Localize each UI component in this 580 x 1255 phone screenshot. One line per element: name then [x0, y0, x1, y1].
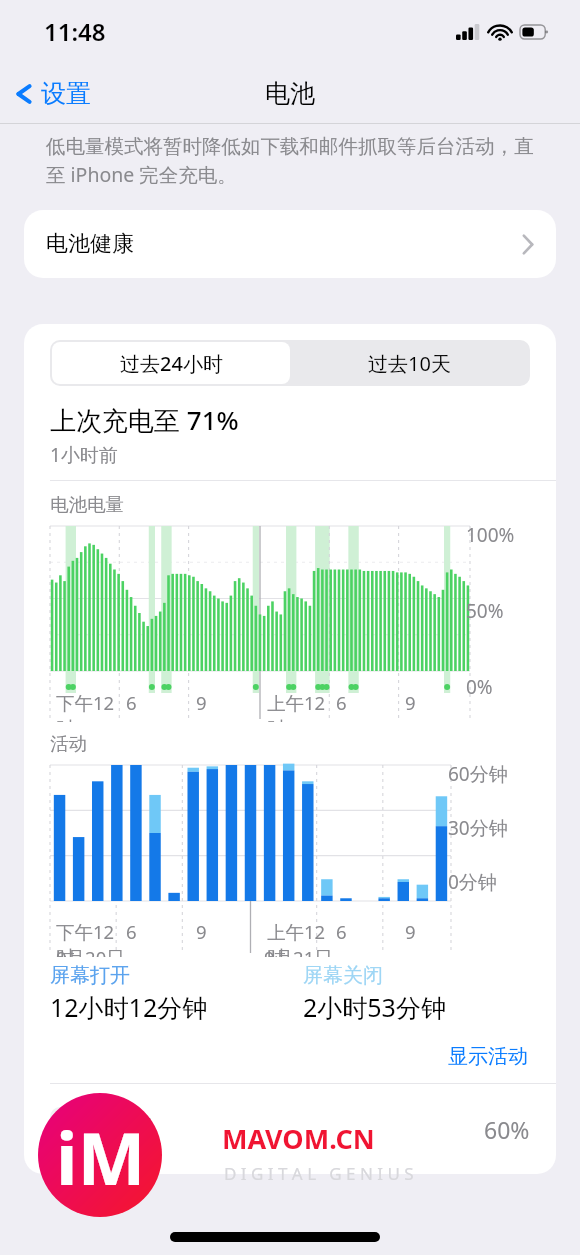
staticText: 上次充电至 71% — [50, 402, 239, 438]
staticText: 屏幕打开 — [50, 963, 130, 988]
staticText: 设置 — [41, 78, 91, 109]
staticText: 过去24小时 — [120, 350, 223, 377]
staticText: 6 — [336, 690, 347, 715]
staticText: 上午12时 — [267, 919, 330, 957]
staticText: 电池健康 — [46, 230, 134, 258]
button[interactable]: 显示活动 — [442, 1038, 534, 1075]
staticText: 上午12时 — [267, 690, 330, 722]
button[interactable]: 过去10天 — [290, 342, 528, 384]
button[interactable]: 过去24小时 — [52, 342, 290, 384]
staticText: 低电量模式将暂时降低如下载和邮件抓取等后台活动，直至 iPhone 完全充电。 — [46, 134, 540, 188]
staticText: 9 — [196, 919, 207, 944]
staticText: 0% — [466, 674, 493, 700]
staticText: 2小时53分钟 — [303, 990, 446, 1024]
button[interactable]: 设置 — [0, 72, 103, 115]
staticText: MAVOM.CN — [222, 1120, 375, 1157]
staticText: 12小时12分钟 — [50, 990, 208, 1024]
staticText: 60分钟 — [448, 761, 508, 787]
staticText: 9月20日 — [56, 945, 125, 957]
staticText: D I G I T A L G E N I U S — [224, 1162, 414, 1185]
staticText: iM — [56, 1108, 146, 1206]
staticText: 50% — [466, 598, 504, 624]
staticText: 电池 — [265, 78, 315, 109]
staticText: 9 — [405, 690, 416, 715]
staticText: 下午12时 — [56, 690, 120, 722]
staticText: 11:48 — [44, 15, 106, 48]
staticText: 6 — [126, 919, 137, 944]
staticText: 6 — [126, 690, 137, 715]
staticText: 活动 — [50, 732, 87, 755]
staticText: 60% — [484, 1114, 530, 1145]
button[interactable]: 荣耀 — [24, 1084, 556, 1174]
staticText: 显示活动 — [448, 1044, 528, 1069]
staticText: 下午12时 — [56, 919, 120, 957]
staticText: 1小时前 — [50, 442, 118, 468]
staticText: 9 — [405, 919, 416, 944]
staticText: 过去10天 — [368, 350, 451, 377]
staticText: 电池电量 — [50, 493, 124, 516]
staticText: 0分钟 — [448, 869, 497, 895]
staticText: 9 — [196, 690, 207, 715]
staticText: 荣耀 — [108, 1115, 152, 1143]
button[interactable]: 电池健康 — [24, 210, 556, 278]
staticText: 屏幕关闭 — [303, 963, 383, 988]
staticText: 9月21日 — [264, 945, 333, 957]
staticText: 6 — [336, 919, 347, 944]
staticText: 30分钟 — [448, 815, 508, 841]
staticText: 100% — [466, 522, 515, 548]
